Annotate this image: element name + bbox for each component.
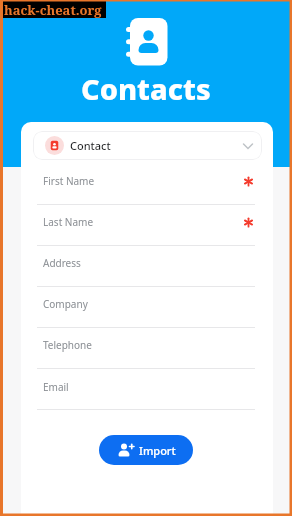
staticText: First Name (43, 174, 95, 188)
staticText: Import (139, 443, 176, 458)
staticText: hack-cheat.org (4, 1, 102, 18)
staticText: Email (43, 380, 69, 394)
staticText: Contact (70, 138, 111, 153)
button[interactable]: Contact (33, 131, 262, 160)
staticText: Address (43, 256, 81, 270)
staticText: Telephone (43, 338, 92, 352)
button[interactable]: Import (99, 435, 193, 465)
staticText: Last Name (43, 215, 94, 229)
staticText: Company (43, 297, 88, 311)
staticText: Contacts (81, 69, 211, 108)
